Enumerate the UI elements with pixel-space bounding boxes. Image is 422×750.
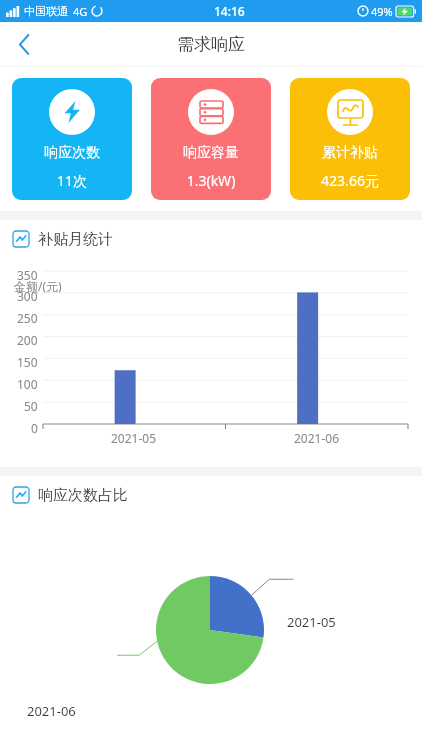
- staticText: 金额/(元): [14, 278, 62, 294]
- staticText: 需求响应: [177, 34, 245, 55]
- staticText: 350: [17, 267, 38, 283]
- staticText: 1.3(kW): [151, 171, 271, 190]
- staticText: 150: [17, 354, 38, 370]
- staticText: 补贴月统计: [38, 230, 113, 249]
- staticText: 100: [17, 376, 38, 392]
- staticText: 250: [17, 310, 38, 326]
- staticText: 14:16: [214, 3, 245, 19]
- staticText: 200: [17, 332, 38, 348]
- button[interactable]: 响应容量: [151, 78, 271, 200]
- staticText: 11次: [12, 171, 132, 190]
- staticText: 49%: [371, 4, 393, 19]
- staticText: 2021-06: [27, 702, 76, 720]
- staticText: 响应次数: [12, 144, 132, 162]
- staticText: 响应次数占比: [38, 486, 128, 505]
- staticText: 4G: [73, 4, 88, 19]
- staticText: 2021-05: [111, 430, 157, 446]
- button[interactable]: 响应次数: [12, 78, 132, 200]
- button[interactable]: 累计补贴: [290, 78, 410, 200]
- staticText: 300: [17, 288, 38, 304]
- staticText: 2021-05: [287, 613, 336, 631]
- staticText: 响应容量: [151, 144, 271, 162]
- button[interactable]: Back: [0, 22, 48, 66]
- staticText: 0: [31, 420, 38, 436]
- staticText: 50: [24, 398, 38, 414]
- staticText: 423.66元: [290, 171, 410, 190]
- staticText: 累计补贴: [290, 144, 410, 162]
- staticText: 中国联通: [24, 4, 68, 18]
- staticText: 2021-06: [294, 430, 340, 446]
